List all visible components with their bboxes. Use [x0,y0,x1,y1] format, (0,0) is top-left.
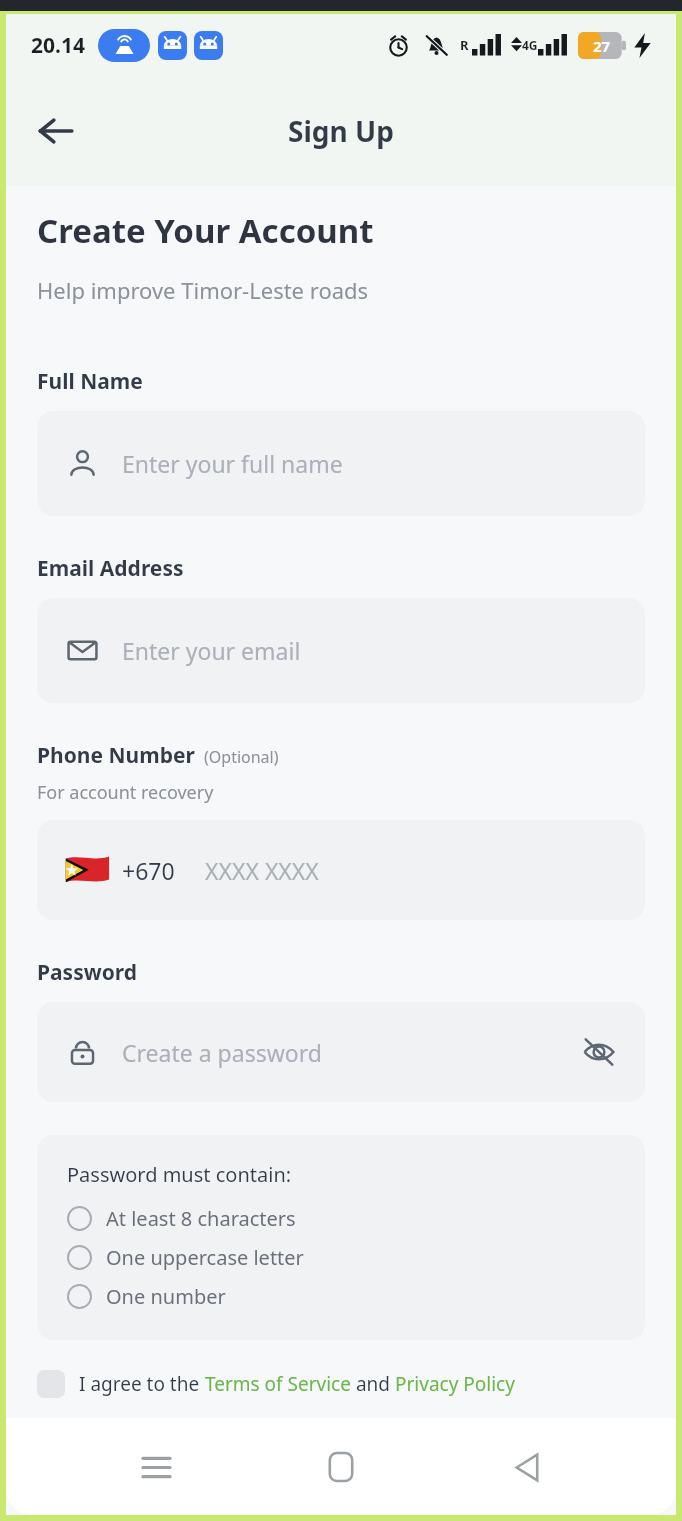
staticText: Terms of Service [205,1371,351,1397]
staticText: Phone Number [37,741,195,770]
button[interactable]: I agree to the [37,1370,645,1398]
staticText: One uppercase letter [106,1244,304,1271]
staticText: +670 [122,855,175,886]
staticText: At least 8 characters [106,1205,296,1232]
button[interactable]: Recent apps [120,1431,192,1503]
button[interactable]: Show password [577,1030,621,1074]
staticText: Password must contain: [67,1161,292,1188]
staticText: One number [106,1283,226,1310]
staticText: and [351,1371,395,1397]
staticText: Privacy Policy [395,1371,515,1397]
staticText: Email Address [37,554,184,583]
staticText: Sign Up [288,112,394,150]
button[interactable]: Back [26,101,86,161]
staticText: 27 [593,36,611,56]
staticText: Create a password [122,1037,322,1068]
staticText: Password [37,958,138,987]
staticText: Create Your Account [37,208,374,253]
button[interactable]: Back [491,1431,563,1503]
staticText: For account recovery [37,780,214,805]
button[interactable]: Enter your full name [37,411,645,516]
staticText: R [460,36,469,54]
staticText: Help improve Timor-Leste roads [37,275,369,305]
staticText: Enter your email [122,635,301,666]
staticText: Enter your full name [122,448,343,479]
staticText: (Optional) [204,746,279,768]
staticText: 20.14 [31,31,85,60]
staticText: 4G [522,37,538,53]
button[interactable]: Home [305,1431,377,1503]
staticText: I agree to the [79,1371,205,1397]
staticText: Full Name [37,367,143,396]
staticText: XXXX XXXX [205,855,319,886]
button[interactable]: Create a password [37,1002,645,1102]
button[interactable]: +670 [37,820,645,920]
button[interactable]: Enter your email [37,598,645,703]
